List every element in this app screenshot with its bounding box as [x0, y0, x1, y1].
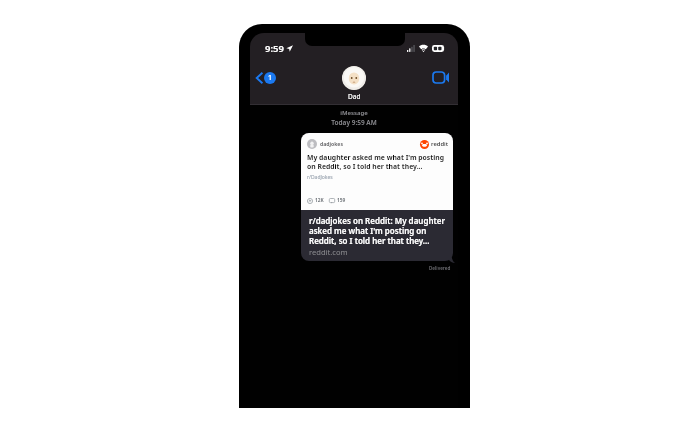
staticText: 9:59: [265, 42, 284, 55]
staticText: r/dadjokes on Reddit: My daughter asked …: [309, 215, 446, 246]
staticText: dadjokes: [320, 141, 343, 148]
staticText: reddit: [431, 140, 449, 148]
button[interactable]: Back: [253, 68, 279, 88]
staticText: Dad: [348, 92, 361, 101]
staticText: 1: [268, 73, 273, 83]
staticText: Today 9:59 AM: [250, 118, 458, 127]
button[interactable]: dadjokes: [301, 133, 453, 261]
staticText: reddit.com: [309, 247, 348, 257]
staticText: iMessage: [250, 109, 458, 117]
staticText: Delivered: [429, 265, 451, 271]
button[interactable]: FaceTime video call: [430, 69, 452, 86]
button[interactable]: Dad: [342, 66, 366, 101]
staticText: 12K: [315, 197, 324, 204]
staticText: r/DadJokes: [307, 174, 333, 181]
staticText: My daughter asked me what I'm posting on…: [307, 153, 449, 171]
staticText: 159: [337, 197, 346, 204]
